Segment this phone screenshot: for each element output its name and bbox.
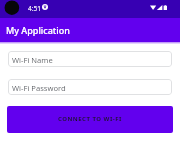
button[interactable]: Wi-Fi Password (8, 79, 172, 95)
staticText: My Application (6, 24, 70, 36)
button[interactable]: Wi-Fi Name (8, 51, 172, 67)
other: Wifi, signal and battery status (150, 5, 167, 10)
staticText: 4:51 (28, 4, 41, 13)
staticText: CONNECT TO WI-FI (58, 115, 122, 123)
other: Notification (42, 4, 48, 10)
staticText: Wi-Fi Password (12, 83, 66, 93)
button[interactable]: CONNECT TO WI-FI (7, 106, 173, 133)
staticText: Wi-Fi Name (12, 55, 53, 65)
